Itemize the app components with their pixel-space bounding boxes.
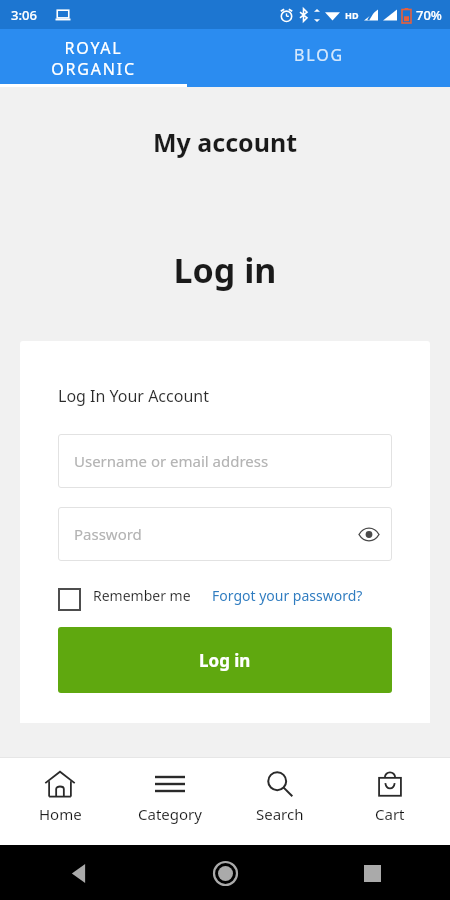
button[interactable]: Password: [58, 507, 392, 561]
staticText: Cart: [375, 804, 405, 824]
staticText: My account: [0, 125, 450, 159]
staticText: Search: [256, 804, 304, 824]
staticText: Category: [138, 804, 202, 824]
staticText: Log in: [0, 247, 450, 293]
button[interactable]: Recents: [352, 853, 392, 893]
staticText: BLOG: [294, 44, 344, 66]
staticText: Forgot your password?: [212, 586, 363, 605]
staticText: Remember me: [93, 586, 191, 605]
staticText: 3:06: [11, 6, 37, 24]
staticText: ROYAL ORGANIC: [51, 37, 136, 80]
button[interactable]: BLOG: [187, 29, 450, 87]
button[interactable]: Cart: [340, 767, 440, 824]
button[interactable]: Back: [58, 853, 98, 893]
button[interactable]: Category: [120, 767, 220, 824]
button[interactable]: ROYAL ORGANIC: [0, 29, 187, 87]
staticText: 70%: [416, 6, 442, 24]
button[interactable]: Username or email address: [58, 434, 392, 488]
staticText: HD: [345, 9, 359, 21]
staticText: Home: [39, 804, 82, 824]
button[interactable]: Remember me: [58, 586, 212, 609]
staticText: Username or email address: [74, 451, 269, 471]
staticText: Log in: [199, 649, 251, 672]
button[interactable]: Log in: [58, 627, 392, 693]
button[interactable]: Search: [230, 767, 330, 824]
button[interactable]: Home: [205, 853, 245, 893]
button[interactable]: Forgot your password?: [212, 586, 392, 605]
button[interactable]: Home: [10, 767, 110, 824]
other: Show password: [359, 528, 379, 541]
staticText: Log In Your Account: [58, 385, 209, 407]
staticText: Password: [74, 524, 142, 544]
